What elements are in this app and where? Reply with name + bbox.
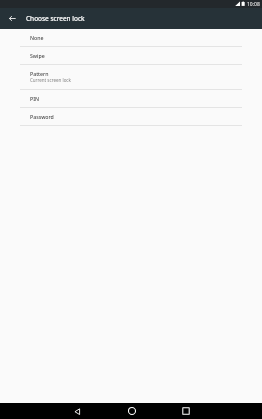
button[interactable]: Home [114,403,150,419]
button[interactable]: Back [59,403,95,419]
button[interactable]: Swipe [0,47,262,64]
staticText: Choose screen lock [26,14,85,23]
staticText: Password [30,113,54,120]
button[interactable]: Pattern [0,65,262,89]
staticText: 10:08 [247,1,260,8]
button[interactable]: None [0,29,262,46]
button[interactable]: Navigate up [0,8,24,29]
button[interactable]: Recent apps [168,403,204,419]
staticText: Swipe [30,52,45,59]
staticText: PIN [30,95,40,102]
staticText: None [30,34,44,41]
staticText: Current screen lock [30,77,71,83]
staticText: Pattern [30,70,49,77]
button[interactable]: PIN [0,90,262,107]
button[interactable]: Password [0,108,262,125]
